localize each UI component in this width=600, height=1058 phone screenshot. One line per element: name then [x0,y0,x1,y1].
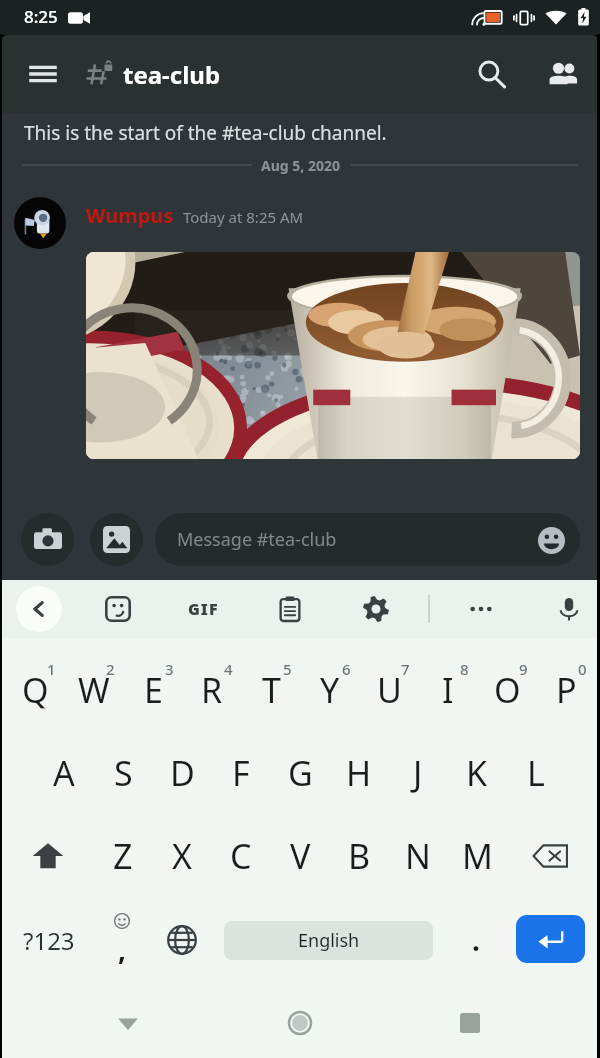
staticText: 1 [47,659,56,679]
button[interactable]: Keyboard tool [268,587,312,631]
button[interactable]: G [271,743,329,803]
button[interactable]: Backspace [521,826,581,886]
button[interactable]: M [448,826,506,886]
staticText: E [144,667,163,713]
staticText: GIF [188,598,219,620]
staticText: C [230,833,252,879]
staticText: S [114,750,133,796]
button[interactable]: O [478,660,536,720]
button[interactable]: Camera [21,513,74,566]
button[interactable]: Keyboard tool [547,587,591,631]
staticText: , [118,930,126,968]
staticText: U [377,667,402,713]
button[interactable]: Keyboard tool [96,587,140,631]
button[interactable]: Q [6,660,64,720]
button[interactable]: C [212,826,270,886]
staticText: Wumpus [86,202,174,229]
staticText: L [527,750,545,796]
staticText: 6 [342,659,351,679]
staticText: 7 [401,659,410,679]
button[interactable]: Attached image [86,252,580,459]
staticText: P [556,667,577,713]
button[interactable]: L [507,743,565,803]
button[interactable]: F [212,743,270,803]
button[interactable]: Wumpus avatar [14,197,66,249]
button[interactable]: P [537,660,595,720]
staticText: Q [22,667,49,713]
button[interactable]: Enter [516,915,585,963]
staticText: A [53,750,75,796]
staticText: Message #tea-club [177,527,337,552]
button[interactable]: H [330,743,388,803]
staticText: This is the start of the #tea-club chann… [24,120,387,146]
staticText: 2 [106,659,115,679]
button[interactable]: U [360,660,418,720]
staticText: F [232,750,250,796]
staticText: 3 [165,659,174,679]
staticText: R [201,667,223,713]
staticText: 9 [519,659,528,679]
staticText: O [494,667,521,713]
button[interactable]: E [124,660,182,720]
button[interactable]: J [389,743,447,803]
staticText: 4 [224,659,233,679]
button[interactable]: GIF [181,587,225,631]
button[interactable]: Gallery [90,513,143,566]
button[interactable]: V [271,826,329,886]
button[interactable]: Back [106,1001,150,1045]
button[interactable]: Comma [93,910,151,970]
staticText: 8:25 [24,5,58,28]
staticText: Z [113,833,133,879]
staticText: Today at 8:25 AM [183,207,304,227]
button[interactable]: Y [301,660,359,720]
button[interactable]: Recents [448,1001,492,1045]
staticText: H [346,750,372,796]
staticText: English [298,928,360,953]
button[interactable]: W [65,660,123,720]
staticText: I [442,667,454,713]
staticText: D [170,750,195,796]
button[interactable]: Emoji [534,523,568,557]
button[interactable]: K [448,743,506,803]
button[interactable]: . [447,910,505,970]
staticText: Aug 5, 2020 [261,156,340,175]
button[interactable]: S [94,743,152,803]
button[interactable]: Back [16,586,62,632]
staticText: 5 [283,659,292,679]
button[interactable]: Members [541,52,585,96]
button[interactable]: Message #tea-club [155,513,580,566]
staticText: 0 [578,659,587,679]
staticText: N [405,833,431,879]
staticText: G [288,750,313,796]
button[interactable]: Keyboard tool [459,587,503,631]
button[interactable]: A [35,743,93,803]
staticText: . [472,921,480,959]
button[interactable]: Z [94,826,152,886]
button[interactable]: X [153,826,211,886]
staticText: Y [320,667,340,713]
button[interactable]: B [330,826,388,886]
staticText: J [413,750,423,796]
staticText: M [462,833,493,879]
staticText: B [348,833,371,879]
button[interactable]: Keyboard tool [354,587,398,631]
button[interactable]: I [419,660,477,720]
staticText: T [262,667,281,713]
button[interactable]: Home [278,1001,322,1045]
button[interactable]: R [183,660,241,720]
button[interactable]: English [224,921,433,960]
staticText: W [78,667,110,713]
staticText: 8 [460,659,469,679]
staticText: ?123 [23,924,75,957]
button[interactable]: Shift [18,826,78,886]
staticText: V [290,833,311,879]
button[interactable]: ?123 [14,910,84,970]
button[interactable]: Language [153,910,211,970]
button[interactable]: Menu [21,52,65,96]
button[interactable]: T [242,660,300,720]
button[interactable]: N [389,826,447,886]
button[interactable]: D [153,743,211,803]
staticText: K [466,750,488,796]
staticText: X [172,833,192,879]
button[interactable]: Search [469,52,513,96]
